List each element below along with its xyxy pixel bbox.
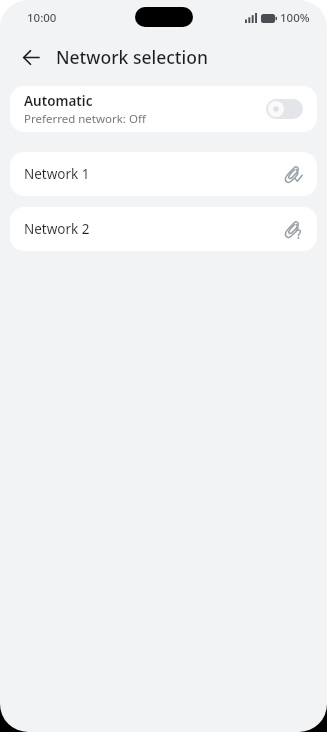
- other: Unknown status: [282, 218, 304, 240]
- staticText: Automatic: [24, 92, 93, 110]
- button[interactable]: Automatic: [10, 86, 317, 132]
- staticText: 10:00: [27, 10, 57, 26]
- staticText: Network selection: [56, 45, 208, 69]
- other: Connected: [282, 163, 304, 185]
- button[interactable]: Network 1: [10, 152, 317, 196]
- button[interactable]: Back: [16, 42, 46, 72]
- staticText: Preferred network: Off: [24, 111, 146, 127]
- button[interactable]: Automatic toggle, off: [266, 99, 303, 119]
- staticText: 100%: [280, 10, 310, 26]
- staticText: Network 1: [24, 165, 282, 183]
- staticText: Network 2: [24, 220, 282, 238]
- button[interactable]: Network 2: [10, 207, 317, 251]
